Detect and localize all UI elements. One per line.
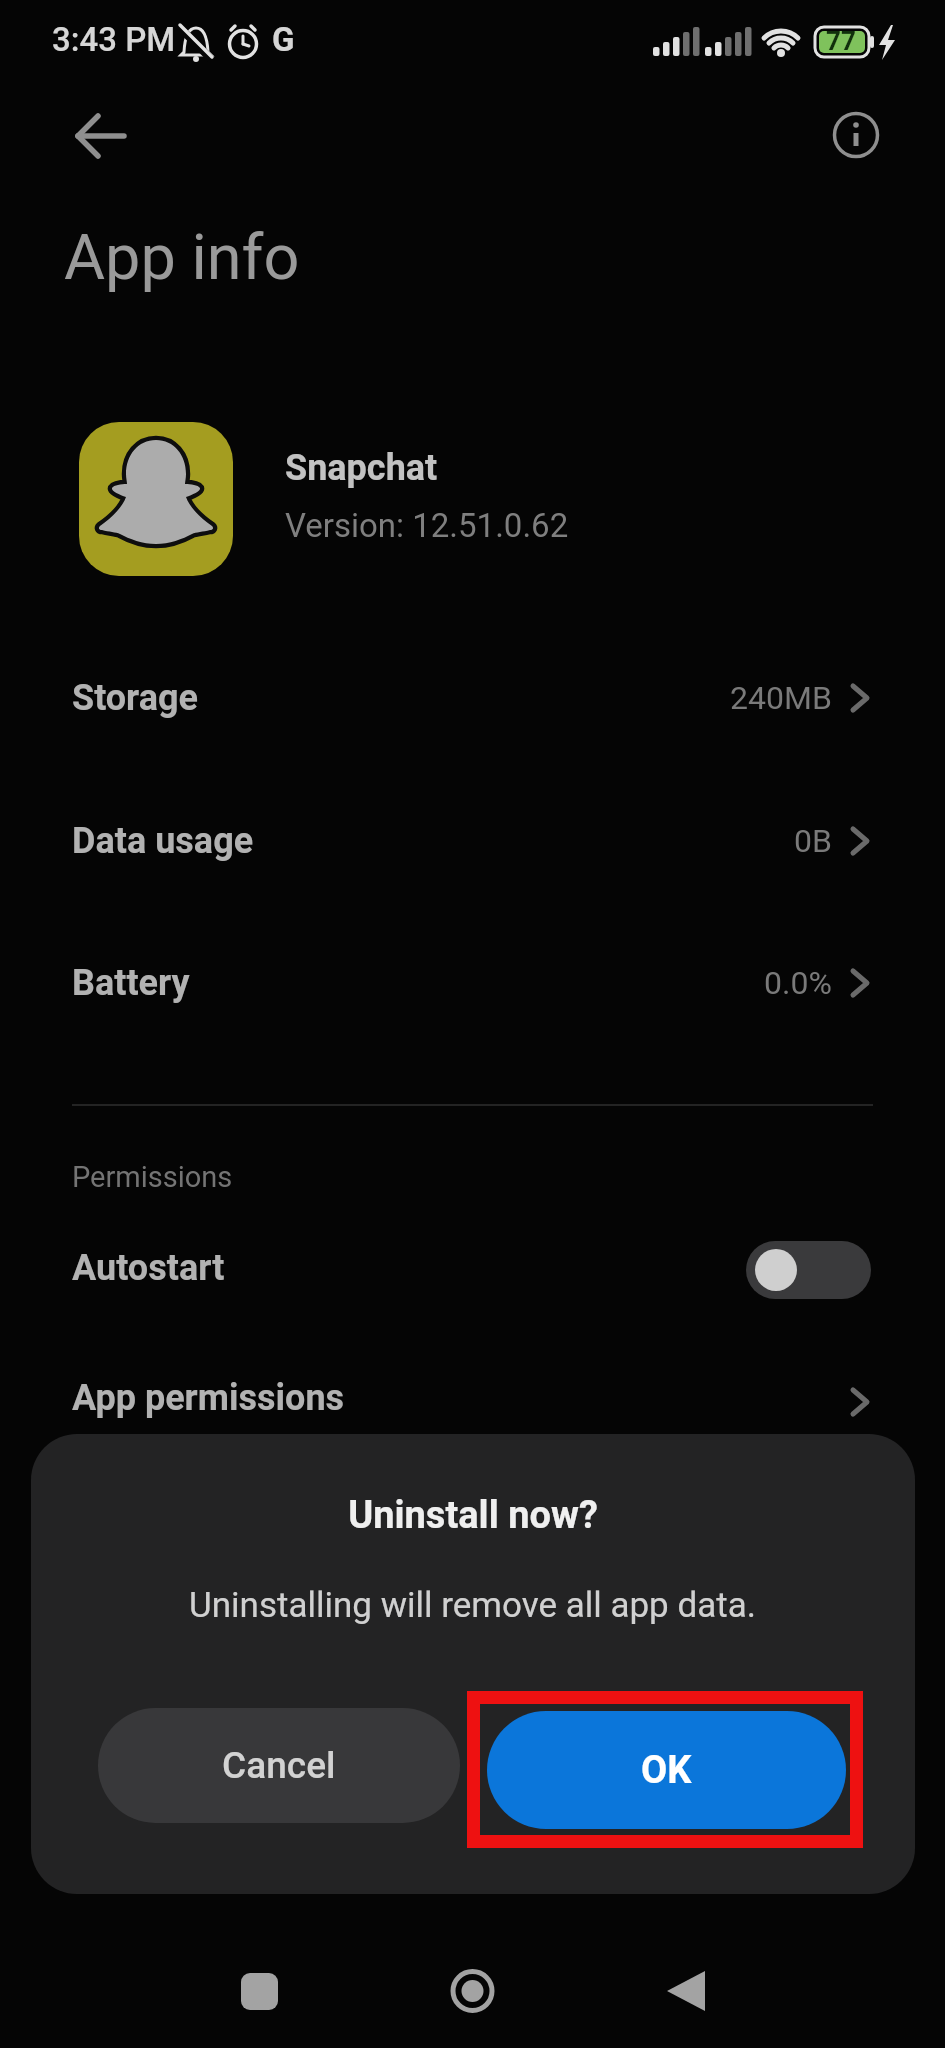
staticText: 77 — [826, 26, 856, 56]
staticText: Snapchat — [285, 447, 438, 489]
staticText: 0.0% — [764, 964, 832, 1002]
staticText: Permissions — [72, 1160, 233, 1194]
staticText: Cancel — [222, 1744, 336, 1787]
staticText: App permissions — [72, 1377, 345, 1419]
staticText: G — [272, 20, 295, 59]
staticText: Version: 12.51.0.62 — [285, 506, 569, 545]
staticText: Data usage — [72, 820, 254, 862]
staticText: App info — [64, 221, 300, 295]
staticText: OK — [641, 1748, 692, 1793]
staticText: Uninstalling will remove all app data. — [189, 1585, 756, 1626]
staticText: 0B — [794, 822, 832, 860]
staticText: Uninstall now? — [348, 1493, 598, 1538]
staticText: Autostart — [72, 1247, 225, 1289]
staticText: Storage — [72, 677, 199, 719]
staticText: 3:43 PM — [52, 20, 176, 59]
staticText: Battery — [72, 962, 190, 1004]
staticText: 240MB — [730, 679, 832, 717]
